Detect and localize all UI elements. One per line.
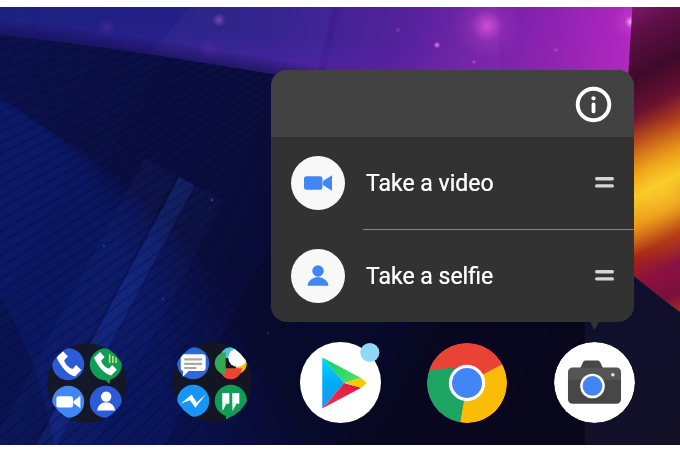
button[interactable]: Take a video — [271, 137, 634, 229]
button[interactable]: Phone folder — [47, 343, 127, 423]
staticText: Take a selfie — [366, 263, 494, 290]
button[interactable]: App info — [573, 84, 613, 124]
button[interactable]: Play Store — [300, 342, 381, 423]
staticText: Take a video — [366, 170, 494, 197]
button[interactable]: Take a selfie — [271, 230, 634, 322]
button[interactable]: Camera — [554, 342, 635, 423]
button[interactable]: Messaging folder — [172, 342, 252, 422]
button[interactable]: Chrome — [427, 343, 507, 423]
